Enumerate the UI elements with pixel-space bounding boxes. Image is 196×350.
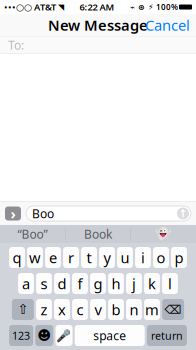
button[interactable]: More options — [5, 206, 21, 220]
staticText: x — [58, 300, 66, 319]
staticText: Cancel — [145, 15, 190, 35]
button[interactable]: Send — [177, 207, 189, 219]
button[interactable]: r — [63, 247, 79, 268]
staticText: f — [77, 274, 82, 293]
staticText: › — [10, 204, 15, 223]
staticText: y — [103, 248, 110, 267]
button[interactable]: i — [135, 247, 151, 268]
button[interactable]: z — [36, 299, 52, 320]
staticText: Boo — [32, 205, 54, 221]
staticText: p — [174, 248, 183, 267]
staticText: return — [151, 328, 183, 343]
button[interactable]: Emoji suggestion — [131, 225, 196, 243]
button[interactable]: a — [18, 273, 34, 294]
staticText: w — [29, 248, 41, 267]
button[interactable]: m — [144, 299, 160, 320]
staticText: g — [93, 274, 102, 293]
staticText: 6:22 AM — [79, 1, 114, 13]
button[interactable]: p — [171, 247, 187, 268]
button[interactable]: Dictation — [55, 325, 72, 346]
staticText: t — [86, 248, 91, 267]
staticText: d — [57, 274, 66, 293]
button[interactable]: c — [72, 299, 88, 320]
button[interactable]: d — [54, 273, 70, 294]
button[interactable]: b — [108, 299, 124, 320]
staticText: space — [93, 327, 126, 343]
button[interactable]: return — [147, 325, 187, 346]
button[interactable]: k — [144, 273, 160, 294]
button[interactable]: w — [27, 247, 43, 268]
staticText: q — [12, 248, 21, 267]
staticText: b — [111, 300, 120, 319]
button[interactable]: o — [153, 247, 169, 268]
button[interactable]: x — [54, 299, 70, 320]
staticText: a — [22, 274, 30, 293]
staticText: ◥ — [58, 2, 64, 12]
button[interactable]: h — [108, 273, 124, 294]
staticText: m — [145, 300, 159, 319]
staticText: •••○○ — [4, 1, 32, 13]
staticText: ☻ — [37, 328, 51, 343]
staticText: New Message — [48, 15, 148, 35]
staticText: z — [40, 300, 47, 319]
button[interactable]: 123 — [9, 325, 33, 346]
staticText: 👻 — [155, 226, 172, 242]
button[interactable]: space — [75, 325, 145, 346]
button[interactable]: v — [90, 299, 106, 320]
button[interactable]: t — [81, 247, 97, 268]
staticText: Book — [84, 226, 112, 242]
staticText: l — [168, 274, 172, 293]
button[interactable]: y — [99, 247, 115, 268]
staticText: o — [156, 248, 165, 267]
button[interactable]: Emoji keyboard — [35, 325, 53, 346]
button[interactable]: Shift — [12, 299, 34, 320]
button[interactable]: Book — [65, 225, 130, 243]
button[interactable]: j — [126, 273, 142, 294]
staticText: u — [120, 248, 129, 267]
staticText: “Boo” — [17, 226, 47, 242]
button[interactable]: “Boo” — [0, 225, 65, 243]
staticText: j — [132, 274, 136, 293]
staticText: 🎤 — [56, 329, 71, 342]
staticText: AT&T — [32, 1, 58, 13]
button[interactable]: g — [90, 273, 106, 294]
staticText: ⌫ — [165, 303, 182, 316]
staticText: ↑ — [178, 207, 187, 219]
button[interactable]: Delete — [162, 299, 184, 320]
staticText: s — [40, 274, 47, 293]
staticText: v — [94, 300, 101, 319]
button[interactable]: e — [45, 247, 61, 268]
staticText: e — [49, 248, 57, 267]
button[interactable]: u — [117, 247, 133, 268]
staticText: 123 — [12, 328, 30, 343]
staticText: k — [148, 274, 156, 293]
button[interactable]: n — [126, 299, 142, 320]
button[interactable]: l — [162, 273, 178, 294]
staticText: c — [76, 300, 83, 319]
staticText: ⌁ ⊛ ⚡︎ 100% — [130, 2, 178, 12]
button[interactable]: q — [9, 247, 25, 268]
staticText: r — [68, 248, 74, 267]
staticText: ⇧ — [17, 302, 28, 317]
staticText: i — [141, 248, 145, 267]
button[interactable]: s — [36, 273, 52, 294]
button[interactable]: f — [72, 273, 88, 294]
button[interactable]: Cancel — [139, 11, 196, 39]
staticText: h — [111, 274, 120, 293]
staticText: n — [129, 300, 138, 319]
staticText: To: — [8, 37, 24, 53]
